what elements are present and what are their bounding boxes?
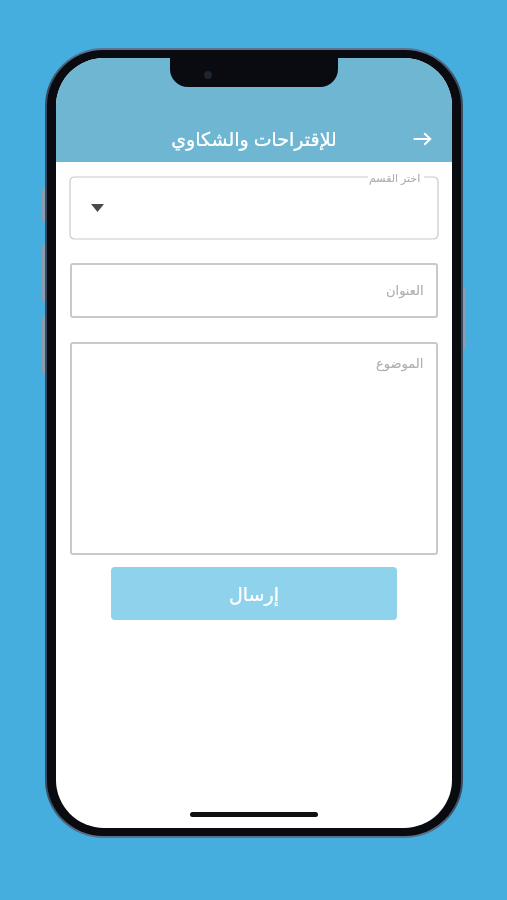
staticText: الموضوع <box>376 356 424 371</box>
staticText: اختر القسم <box>369 170 421 185</box>
button[interactable]: العنوان <box>70 263 438 318</box>
button[interactable]: فتح القائمة <box>70 177 438 239</box>
staticText: إرسال <box>229 583 279 605</box>
staticText: للإقتراحات والشكاوي <box>171 126 337 152</box>
button[interactable]: فتح القائمة <box>86 197 108 219</box>
button[interactable]: الموضوع <box>70 342 438 555</box>
staticText: العنوان <box>386 283 424 298</box>
button[interactable]: إرسال <box>111 567 397 620</box>
button[interactable]: رجوع <box>402 119 442 159</box>
